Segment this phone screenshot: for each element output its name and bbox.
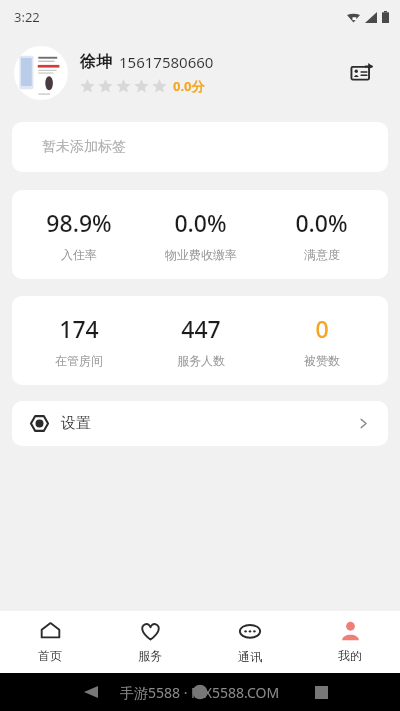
staticText: 447 (181, 313, 221, 344)
button[interactable]: 通讯 (200, 611, 300, 673)
button[interactable]: Avatar (0, 34, 400, 112)
staticText: 174 (59, 313, 99, 344)
staticText: 物业费收缴率 (165, 247, 237, 262)
staticText: 设置 (61, 414, 91, 433)
staticText: 在管房间 (55, 353, 103, 368)
staticText: 0.0% (295, 207, 348, 238)
staticText: 98.9% (46, 207, 112, 238)
staticText: 满意度 (304, 247, 340, 262)
staticText: 3:22 (14, 8, 40, 26)
staticText: 通讯 (238, 649, 262, 664)
button[interactable]: Avatar (14, 46, 68, 100)
staticText: 15617580660 (119, 52, 214, 72)
staticText: 服务 (138, 648, 162, 663)
button[interactable]: 设置 (12, 401, 388, 446)
button[interactable]: 174 (12, 296, 388, 385)
button[interactable]: Share contact (342, 53, 382, 93)
staticText: 0.0% (174, 207, 227, 238)
staticText: 我的 (338, 648, 362, 663)
staticText: 暂未添加标签 (42, 138, 126, 156)
staticText: 首页 (38, 648, 62, 663)
staticText: 0.0分 (173, 77, 205, 95)
staticText: 手游5588 · MX5588.COM (120, 683, 280, 702)
staticText: 徐坤 (80, 52, 112, 72)
button[interactable]: 暂未添加标签 (12, 122, 388, 172)
staticText: 0 (315, 313, 329, 344)
staticText: 被赞数 (304, 353, 340, 368)
button[interactable]: 我的 (300, 611, 400, 673)
button[interactable]: 服务 (100, 611, 200, 673)
button[interactable]: 首页 (0, 611, 100, 673)
staticText: 入住率 (61, 247, 97, 262)
button[interactable]: 98.9% (12, 190, 388, 279)
staticText: 服务人数 (177, 353, 225, 368)
